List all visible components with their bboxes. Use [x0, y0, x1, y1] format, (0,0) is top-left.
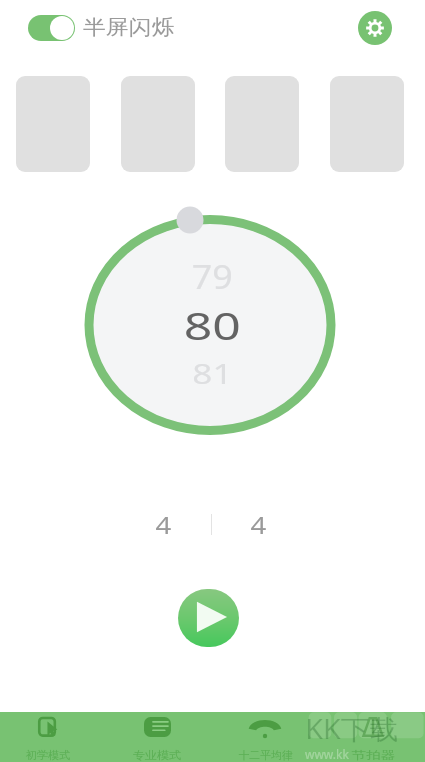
staticText: 初学模式	[26, 748, 70, 762]
button[interactable]	[16, 76, 90, 172]
staticText: www.kk	[305, 746, 349, 762]
staticText: 79	[192, 255, 233, 299]
button[interactable]: 4	[157, 509, 171, 540]
button[interactable]: Half-screen flash toggle	[28, 15, 75, 41]
button[interactable]	[121, 76, 195, 172]
staticText: 80	[184, 298, 241, 351]
button[interactable]	[330, 76, 404, 172]
button[interactable]: 专业模式	[112, 712, 202, 762]
staticText: 4	[251, 509, 267, 540]
button[interactable]: 初学模式	[3, 712, 93, 762]
staticText: 4	[156, 509, 172, 540]
staticText: KK下载	[305, 710, 399, 747]
staticText: 81	[192, 355, 233, 392]
staticText: 半屏闪烁	[83, 15, 174, 40]
button[interactable]: 十二平均律	[220, 712, 310, 762]
staticText: 节拍器	[351, 748, 395, 762]
button[interactable]: Settings	[358, 11, 392, 45]
button[interactable]: 节拍器	[328, 712, 418, 762]
staticText: 专业模式	[133, 748, 181, 762]
button[interactable]: 4	[252, 509, 266, 540]
button[interactable]	[225, 76, 299, 172]
staticText: 十二平均律	[238, 748, 292, 762]
button[interactable]: Play	[178, 589, 239, 647]
